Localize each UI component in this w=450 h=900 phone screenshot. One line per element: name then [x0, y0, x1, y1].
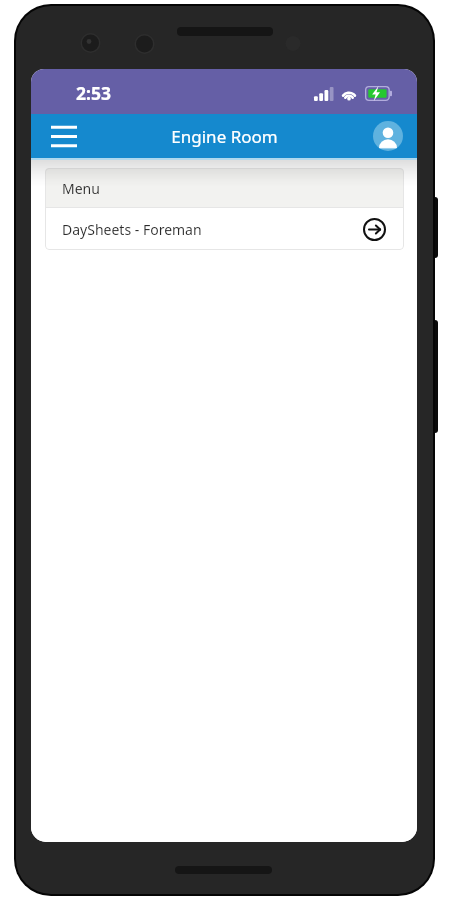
staticText: DaySheets - Foreman [62, 220, 202, 239]
staticText: Engine Room [171, 125, 278, 148]
button[interactable]: Account [373, 121, 403, 151]
button[interactable]: DaySheets - Foreman [45, 208, 404, 250]
staticText: Menu [62, 179, 100, 198]
staticText: 2:53 [76, 81, 111, 105]
button[interactable]: Open navigation menu [42, 114, 86, 158]
